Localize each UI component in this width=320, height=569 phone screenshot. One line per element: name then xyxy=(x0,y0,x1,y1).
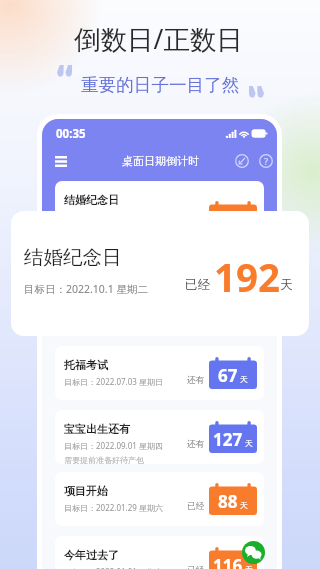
button[interactable]: 今年过去了 xyxy=(55,536,264,569)
staticText: 今年过去了 xyxy=(64,548,119,562)
staticText: 已经 xyxy=(185,277,210,293)
staticText: 倒数日/正数日 xyxy=(74,21,243,57)
staticText: 天 xyxy=(245,564,253,569)
staticText: 116 xyxy=(213,554,243,569)
staticText: 67 xyxy=(218,364,238,387)
staticText: 已经 xyxy=(187,501,205,512)
staticText: 桌面日期倒计时 xyxy=(122,154,199,168)
staticText: 192 xyxy=(213,208,243,231)
staticText: 项目开始 xyxy=(64,484,108,498)
staticText: 00:35 xyxy=(56,126,86,142)
staticText: 天 xyxy=(280,277,293,293)
button[interactable]: 托福考试 xyxy=(55,346,264,400)
staticText: 宝宝出生还有 xyxy=(64,422,130,436)
staticText: 还有 xyxy=(187,439,205,450)
staticText: 天 xyxy=(240,500,248,510)
staticText: 目标日：2022.10.1 星期二 xyxy=(24,282,148,296)
staticText: 目标日：2022.09.01 星期四 xyxy=(64,440,163,451)
staticText: ? xyxy=(264,155,269,167)
staticText: 重要的日子一目了然 xyxy=(81,74,240,96)
staticText: 127 xyxy=(213,428,243,451)
staticText: 天 xyxy=(240,374,248,384)
staticText: 192 xyxy=(214,251,281,303)
staticText: 目标日：2022.01.29 星期六 xyxy=(64,502,163,513)
staticText: 已经 xyxy=(187,565,205,569)
button[interactable]: WeChat xyxy=(242,541,265,564)
staticText: 目标日：2022.01.01 星期六 xyxy=(64,566,163,569)
button[interactable]: 结婚纪念日 xyxy=(11,211,309,336)
button[interactable]: 结婚纪念日 xyxy=(55,181,264,253)
button[interactable]: 宝宝出生还有 xyxy=(55,410,264,464)
button[interactable]: Menu xyxy=(48,148,74,174)
staticText: 还有 xyxy=(187,375,205,386)
staticText: 托福考试 xyxy=(64,358,108,372)
staticText: 目标日：2022.07.03 星期日 xyxy=(64,376,163,387)
staticText: 天 xyxy=(245,438,253,448)
button[interactable]: Help xyxy=(256,151,276,171)
staticText: 结婚纪念日 xyxy=(64,193,119,207)
button[interactable]: Sort xyxy=(232,151,252,171)
staticText: 需要提前准备好待产包 xyxy=(64,455,144,464)
button[interactable]: 项目开始 xyxy=(55,472,264,526)
staticText: 88 xyxy=(218,490,238,513)
staticText: 结婚纪念日 xyxy=(24,245,122,270)
